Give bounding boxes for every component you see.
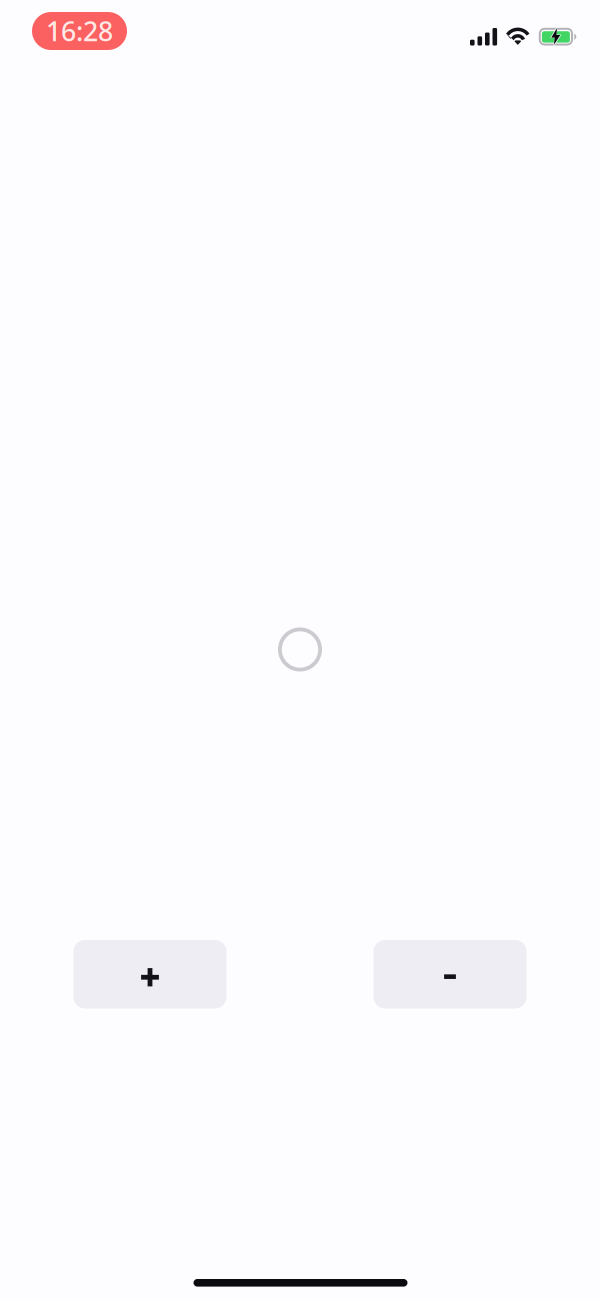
button[interactable]: Increase [73, 940, 226, 1008]
button[interactable]: Decrease [373, 940, 526, 1008]
button[interactable]: 16:28 [32, 12, 127, 50]
staticText: 16:28 [46, 13, 113, 49]
